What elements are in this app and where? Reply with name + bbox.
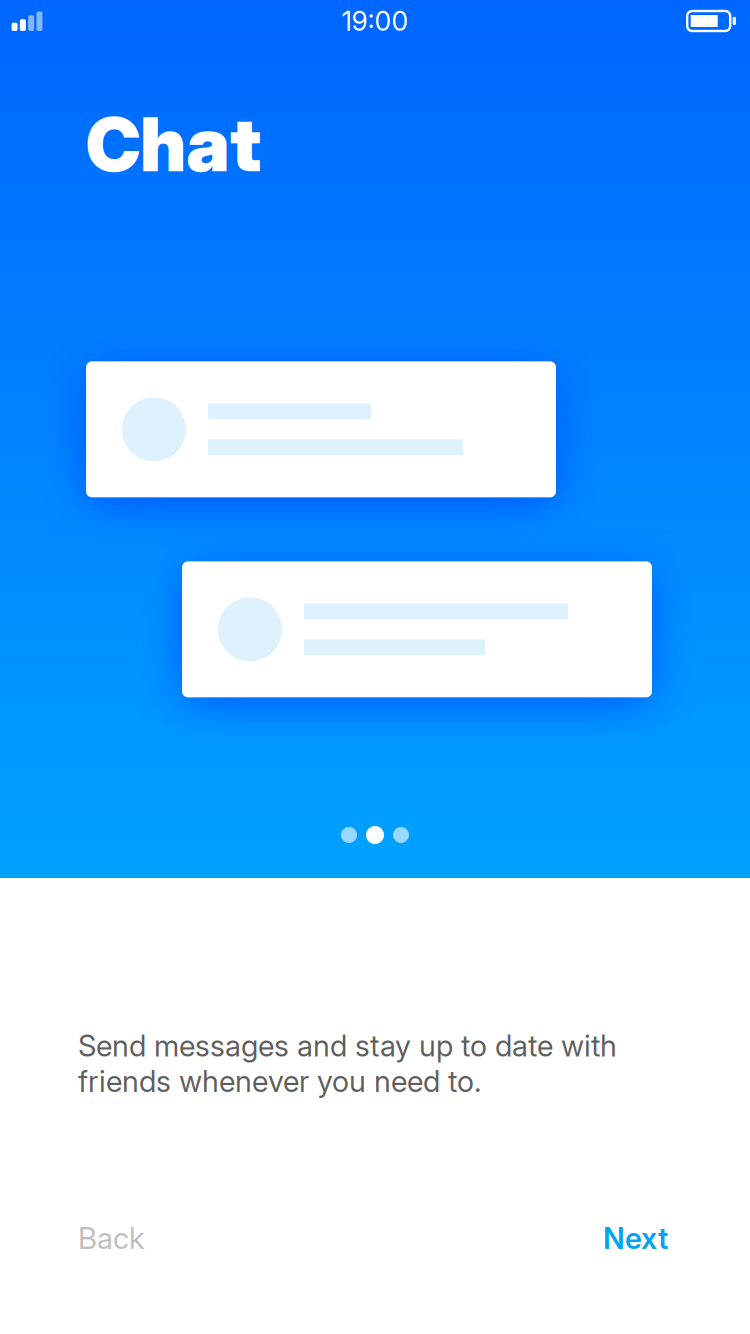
button[interactable]: Next [603,1220,668,1256]
staticText: Chat [86,99,261,189]
staticText: Back [78,1220,145,1256]
staticText: 19:00 [341,5,408,37]
staticText: Send messages and stay up to date with f… [78,1028,617,1099]
button[interactable]: Page 1 [341,827,357,843]
button[interactable]: Back [78,1220,145,1256]
button[interactable]: Page 3 [393,827,409,843]
staticText: Next [603,1220,668,1256]
button[interactable]: Page 2, current page [366,826,384,844]
